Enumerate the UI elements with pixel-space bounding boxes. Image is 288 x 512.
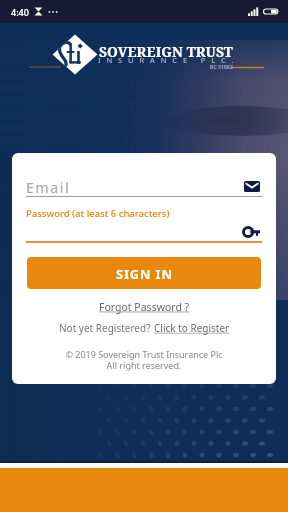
staticText: RC 31062 xyxy=(210,64,233,71)
button[interactable]: Click to Register xyxy=(154,321,230,335)
button[interactable]: Forgot Password ? xyxy=(99,300,190,314)
button[interactable]: Password xyxy=(243,227,261,237)
staticText: Not yet Registered? xyxy=(59,321,154,335)
button[interactable]: SIGN IN xyxy=(27,257,261,289)
staticText: 4:40 xyxy=(11,6,29,18)
staticText: SIGN IN xyxy=(116,265,173,282)
staticText: SOVEREIGN TRUST xyxy=(99,42,233,61)
staticText: INSURANCE PLC. xyxy=(98,55,240,65)
staticText: Email xyxy=(26,178,71,197)
staticText: Password (at least 6 characters) xyxy=(26,207,170,220)
staticText: © 2019 Sovereign Trust Insurance Plc All… xyxy=(12,348,276,371)
button[interactable]: Email xyxy=(244,181,260,192)
